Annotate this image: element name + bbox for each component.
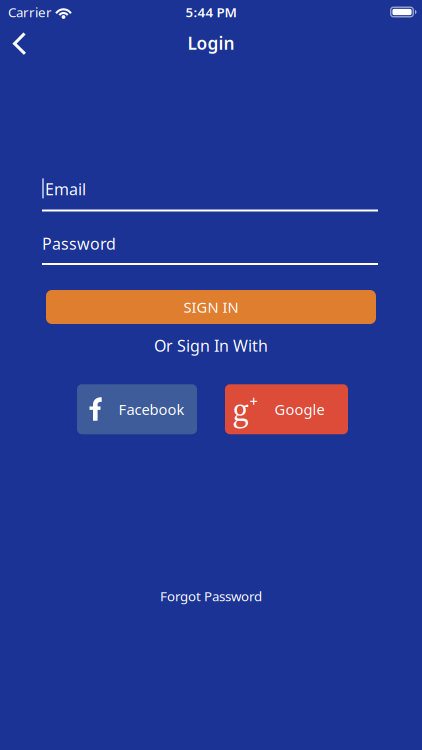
button[interactable]: Forgot Password [160, 587, 262, 605]
staticText: Login [187, 31, 234, 54]
staticText: SIGN IN [183, 297, 238, 317]
button[interactable]: Facebook [77, 384, 197, 434]
staticText: Facebook [118, 399, 184, 419]
staticText: g [232, 387, 248, 431]
button[interactable]: Email [0, 179, 422, 211]
button[interactable]: SIGN IN [0, 290, 422, 324]
staticText: Google [274, 399, 324, 419]
staticText: Or Sign In With [154, 335, 268, 356]
staticText: + [249, 391, 257, 411]
button[interactable]: g [225, 384, 348, 434]
staticText: Email [45, 178, 86, 200]
staticText: Forgot Password [160, 587, 262, 605]
button[interactable]: Back [0, 24, 36, 62]
staticText: Carrier [8, 3, 52, 21]
button[interactable]: Password [0, 233, 422, 265]
staticText: 5:44 PM [185, 3, 236, 21]
staticText: Password [42, 233, 116, 254]
